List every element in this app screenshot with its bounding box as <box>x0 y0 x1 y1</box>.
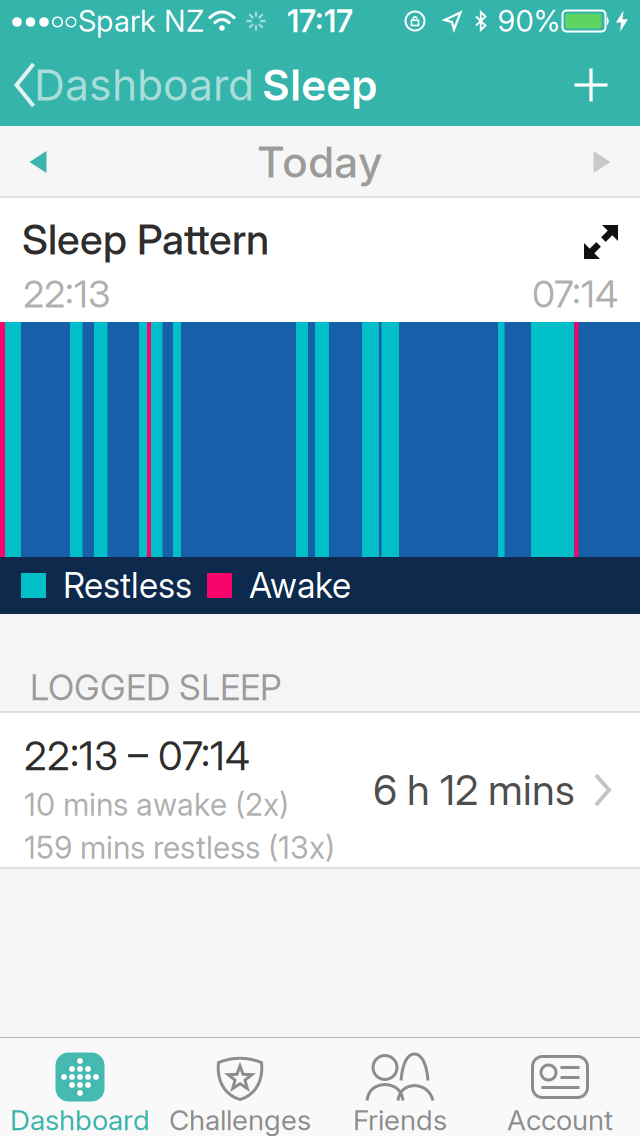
staticText: Sleep <box>262 60 378 110</box>
staticText: 6 h 12 mins <box>373 766 575 814</box>
staticText: 07:14 <box>532 272 618 316</box>
button[interactable]: Friends <box>320 1038 480 1136</box>
staticText: Restless <box>63 565 192 606</box>
button[interactable] <box>563 204 639 280</box>
staticText: Dashboard <box>34 60 254 110</box>
staticText: Awake <box>249 565 351 606</box>
staticText: Friends <box>353 1103 447 1136</box>
staticText: 17:17 <box>287 3 353 39</box>
staticText: Sleep Pattern <box>22 215 269 264</box>
staticText: Spark NZ <box>78 4 204 38</box>
staticText: 90% <box>497 4 560 38</box>
button[interactable]: Challenges <box>160 1038 320 1136</box>
button[interactable]: Dashboard <box>0 44 250 126</box>
staticText: 10 mins awake (2x) <box>24 786 289 823</box>
button[interactable]: Account <box>480 1038 640 1136</box>
button[interactable]: Dashboard <box>0 1038 160 1136</box>
button[interactable] <box>0 127 76 197</box>
staticText: Dashboard <box>10 1103 150 1136</box>
button[interactable]: 22:13 – 07:14 <box>0 713 640 867</box>
staticText: LOGGED SLEEP <box>30 667 282 708</box>
staticText: 159 mins restless (13x) <box>24 830 335 866</box>
staticText: 22:13 <box>23 272 111 316</box>
button[interactable] <box>556 44 626 126</box>
staticText: Account <box>507 1103 613 1136</box>
staticText: Challenges <box>169 1103 311 1136</box>
staticText: 22:13 – 07:14 <box>24 732 250 779</box>
staticText: Today <box>257 137 383 187</box>
button[interactable] <box>564 127 640 197</box>
